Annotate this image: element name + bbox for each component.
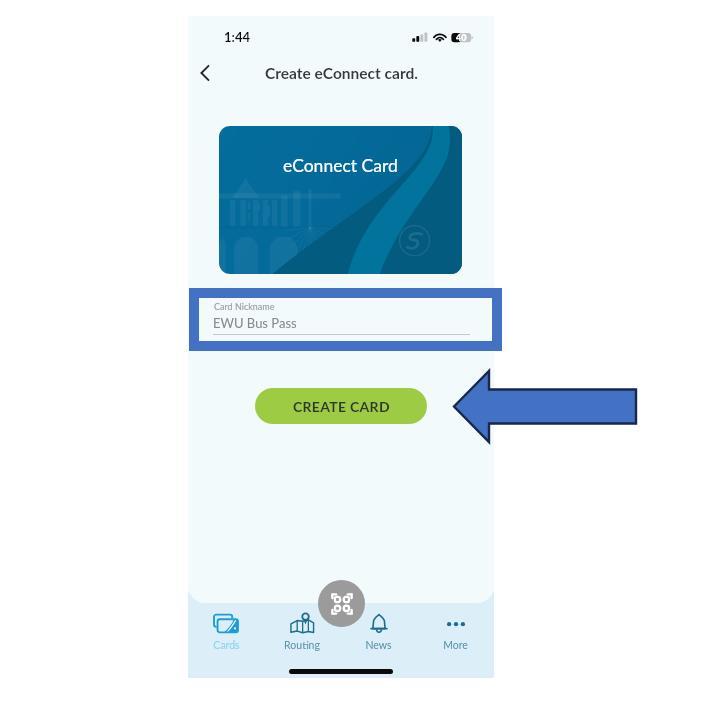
staticText: News bbox=[365, 639, 392, 652]
staticText: CREATE CARD bbox=[293, 398, 390, 415]
staticText: 1:44 bbox=[224, 29, 250, 45]
button[interactable]: News bbox=[340, 612, 417, 652]
button[interactable]: Routing bbox=[264, 612, 340, 652]
button[interactable]: Back bbox=[191, 58, 221, 88]
staticText: More bbox=[443, 639, 468, 652]
staticText: Cards bbox=[213, 639, 240, 652]
staticText: Card Nickname bbox=[214, 301, 275, 312]
staticText: EWU Bus Pass bbox=[213, 315, 297, 331]
staticText: 40 bbox=[456, 32, 467, 41]
staticText: Routing bbox=[284, 639, 320, 652]
button[interactable]: More bbox=[417, 612, 494, 652]
staticText: eConnect Card bbox=[283, 155, 398, 176]
button[interactable]: Cards bbox=[188, 612, 264, 652]
button[interactable]: eConnect Card preview bbox=[219, 126, 462, 274]
staticText: Create eConnect card. bbox=[265, 64, 418, 83]
button[interactable]: Scan QR code bbox=[318, 580, 365, 627]
button[interactable]: CREATE CARD bbox=[255, 388, 427, 424]
